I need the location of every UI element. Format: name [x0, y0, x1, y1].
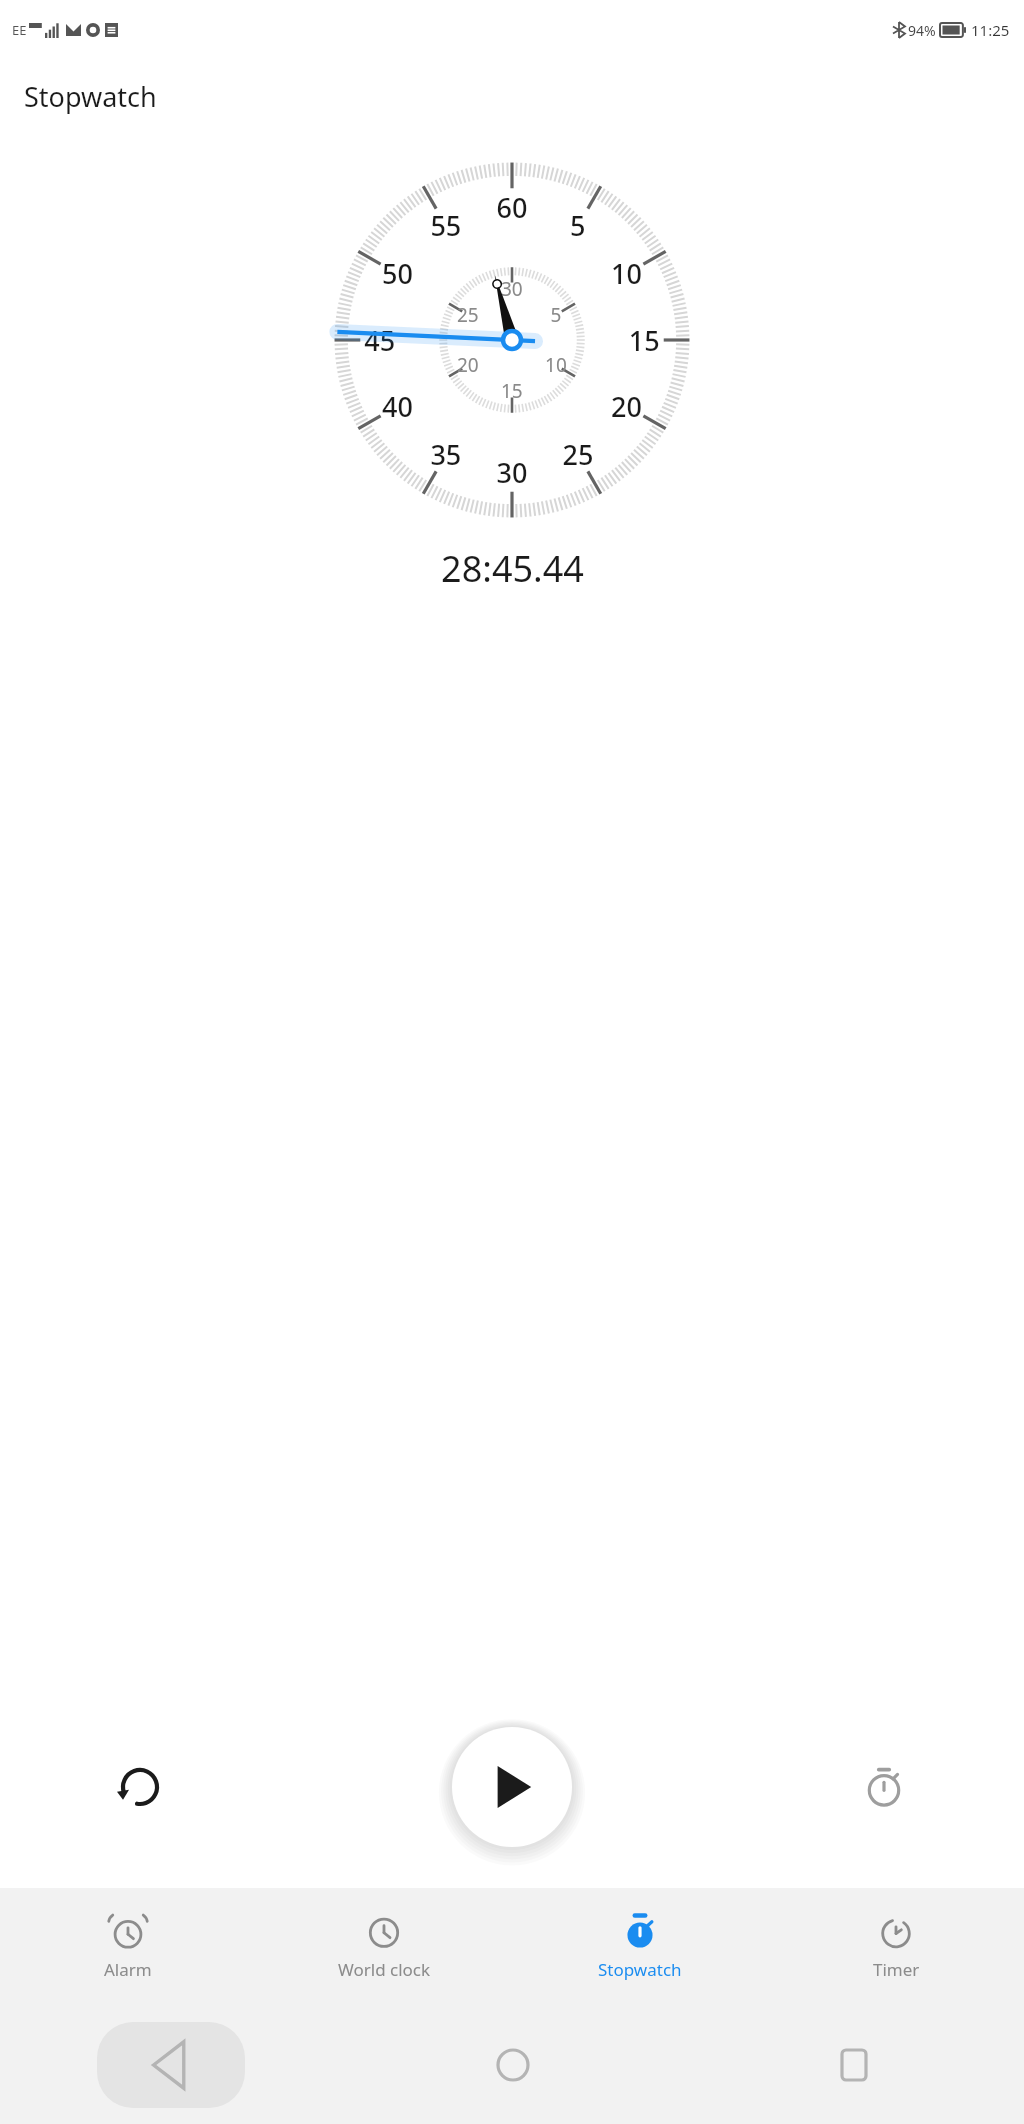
staticText: Timer	[873, 1958, 920, 1981]
button[interactable]: Lap	[852, 1755, 916, 1819]
button[interactable]: Timer	[768, 1888, 1024, 2006]
staticText: Stopwatch	[598, 1958, 682, 1981]
button[interactable]: Stopwatch	[512, 1888, 768, 2006]
button[interactable]: Back	[97, 2022, 245, 2108]
staticText: EE	[12, 21, 27, 39]
staticText: 28:45.44	[441, 544, 584, 593]
button[interactable]: Alarm	[0, 1888, 256, 2006]
staticText: 11:25	[971, 20, 1010, 40]
staticText: Alarm	[104, 1958, 152, 1981]
staticText: 94%	[908, 21, 936, 40]
button[interactable]: Start	[452, 1727, 572, 1847]
button[interactable]: Reset	[108, 1755, 172, 1819]
button[interactable]: Recents	[811, 2022, 897, 2108]
staticText: World clock	[338, 1958, 431, 1981]
button[interactable]: World clock	[256, 1888, 512, 2006]
staticText: Stopwatch	[24, 78, 157, 115]
button[interactable]: Home	[470, 2022, 556, 2108]
